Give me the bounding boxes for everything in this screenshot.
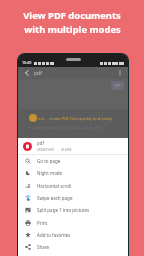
staticText: create PDF files quickly and easily [49, 116, 112, 121]
staticText: Horizontal scroll [37, 183, 72, 189]
staticText: Night mode [37, 170, 63, 176]
button[interactable]: Night mode [25, 167, 128, 179]
button[interactable]: Go to page [25, 155, 128, 167]
staticText: Share [37, 244, 50, 250]
button[interactable]: Share [25, 241, 128, 253]
button[interactable]: pdf [23, 138, 128, 154]
button[interactable]: Swipe each page [25, 192, 128, 204]
staticText: 10:40 [22, 60, 32, 65]
staticText: Print [37, 220, 48, 226]
staticText: 1/1 [114, 83, 121, 88]
staticText: View PDF documents [23, 9, 121, 22]
staticText: ads [38, 116, 45, 121]
staticText: pdf [34, 70, 42, 77]
staticText: Go to page [37, 158, 61, 164]
staticText: 2023/01/05 [37, 148, 54, 152]
staticText: pdf [37, 140, 44, 146]
staticText: 414 KB [61, 148, 72, 152]
staticText: Add to favorites [37, 232, 71, 238]
button[interactable]: Print [25, 216, 128, 229]
button[interactable]: Split page 1 into pictures [25, 204, 128, 216]
staticText: Try different formats, 100% FREE on Goog… [29, 126, 102, 130]
button[interactable]: More options [116, 69, 124, 77]
staticText: Swipe each page [37, 195, 73, 201]
button[interactable]: Add to favorites [25, 229, 128, 241]
staticText: Split page 1 into pictures [37, 207, 90, 213]
button[interactable]: Back [23, 69, 31, 77]
staticText: with multiple modes [24, 23, 121, 36]
button[interactable]: Horizontal scroll [25, 179, 128, 192]
